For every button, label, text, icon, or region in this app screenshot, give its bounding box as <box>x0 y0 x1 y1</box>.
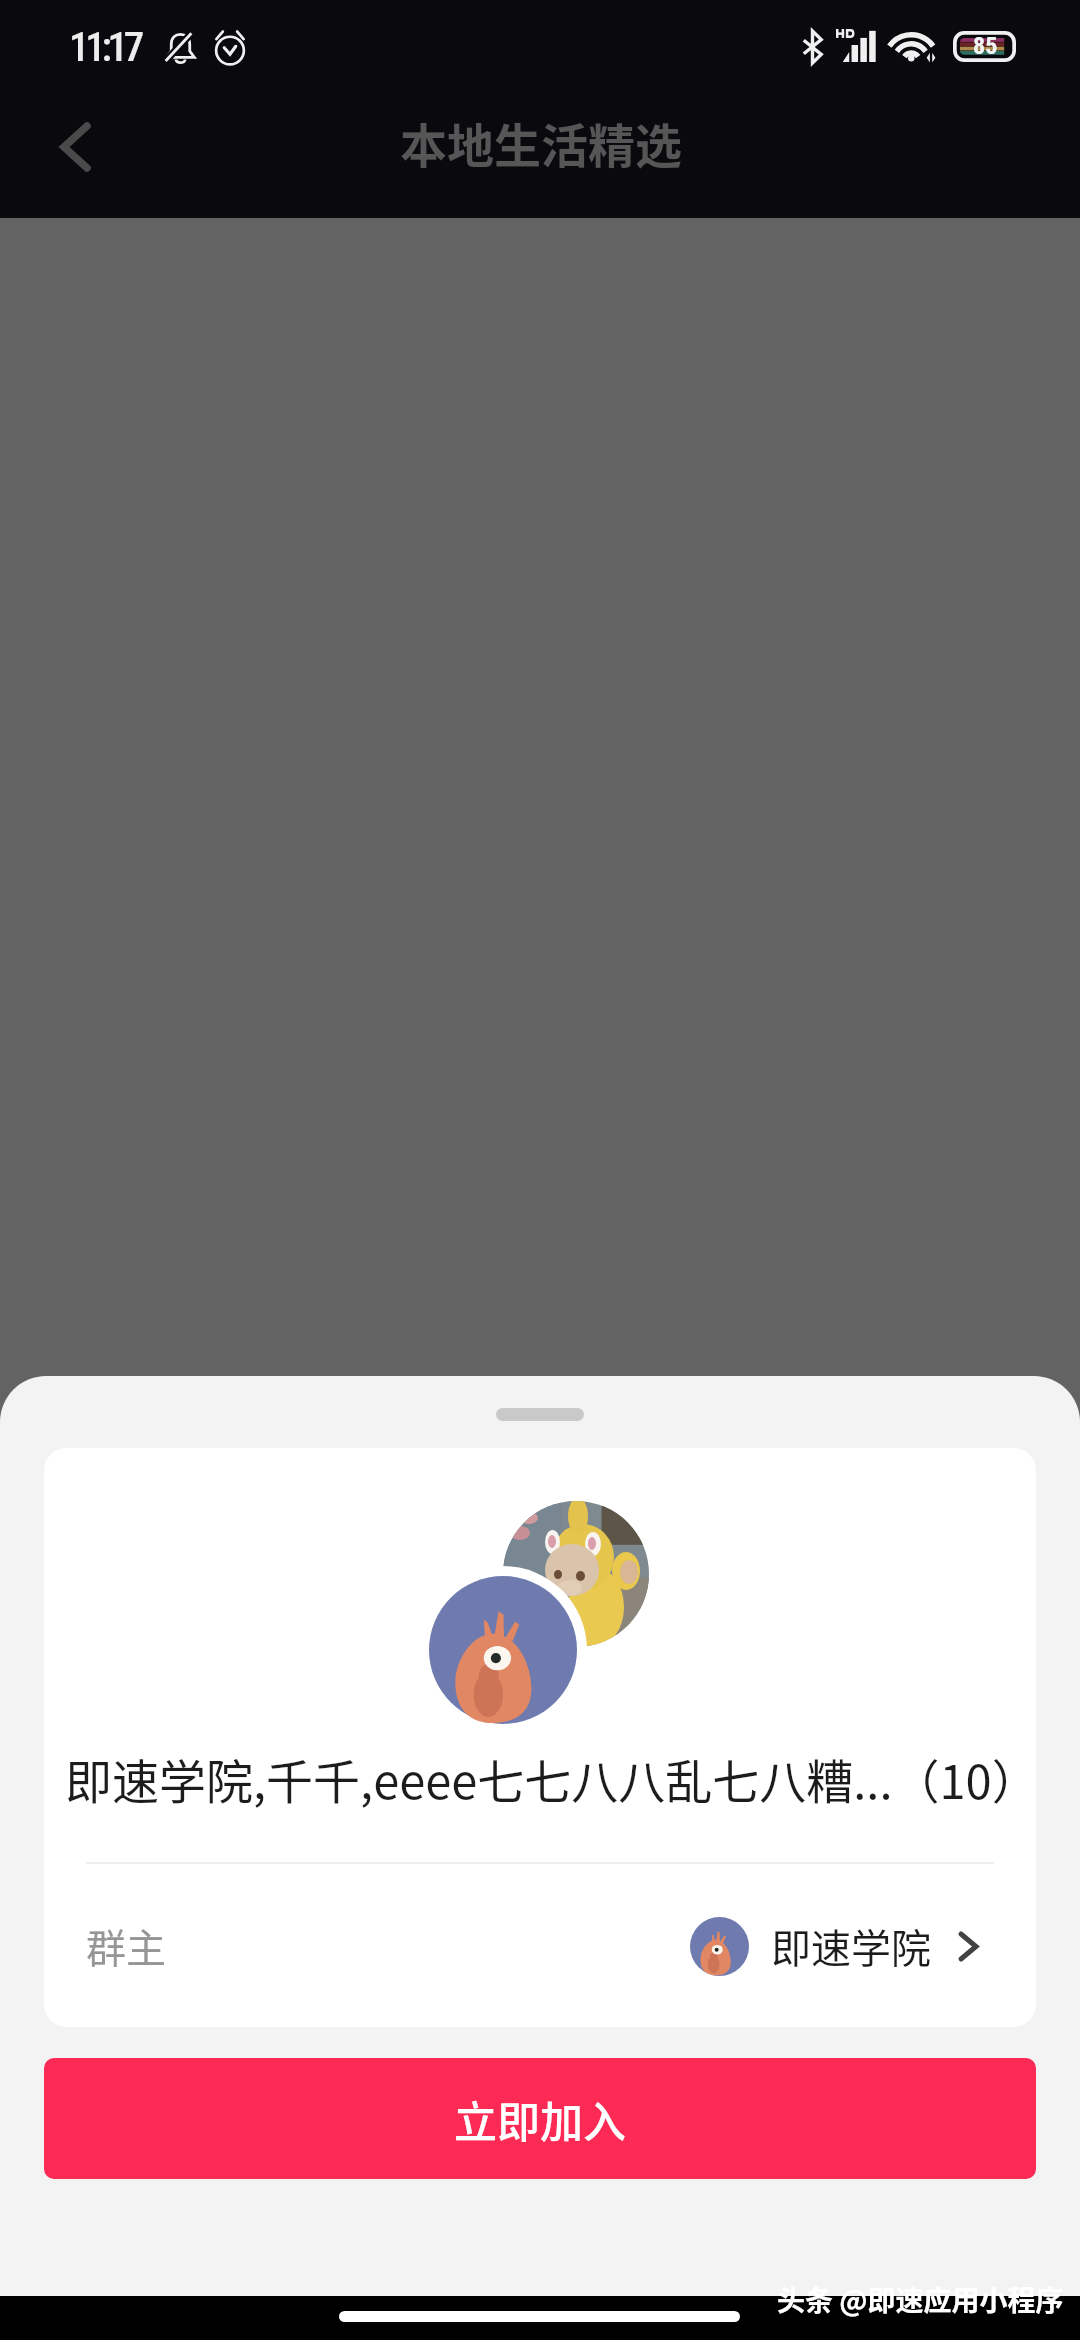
staticText: 群主 <box>86 1917 166 1975</box>
staticText: 头条 @即速应用小程序 <box>777 2279 1064 2320</box>
button[interactable]: 群主 <box>44 1865 1036 2027</box>
staticText: 即速学院,千千,eeee七七八八乱七八糟...（10） <box>65 1744 1036 1812</box>
staticText: 立即加入 <box>454 2088 626 2150</box>
staticText: 11:17 <box>69 23 140 71</box>
staticText: 85 <box>973 32 998 60</box>
staticText: 即速学院 <box>771 1917 931 1975</box>
staticText: 本地生活精选 <box>400 108 682 176</box>
button[interactable]: Back <box>16 85 134 208</box>
button[interactable]: 立即加入 <box>44 2058 1036 2179</box>
